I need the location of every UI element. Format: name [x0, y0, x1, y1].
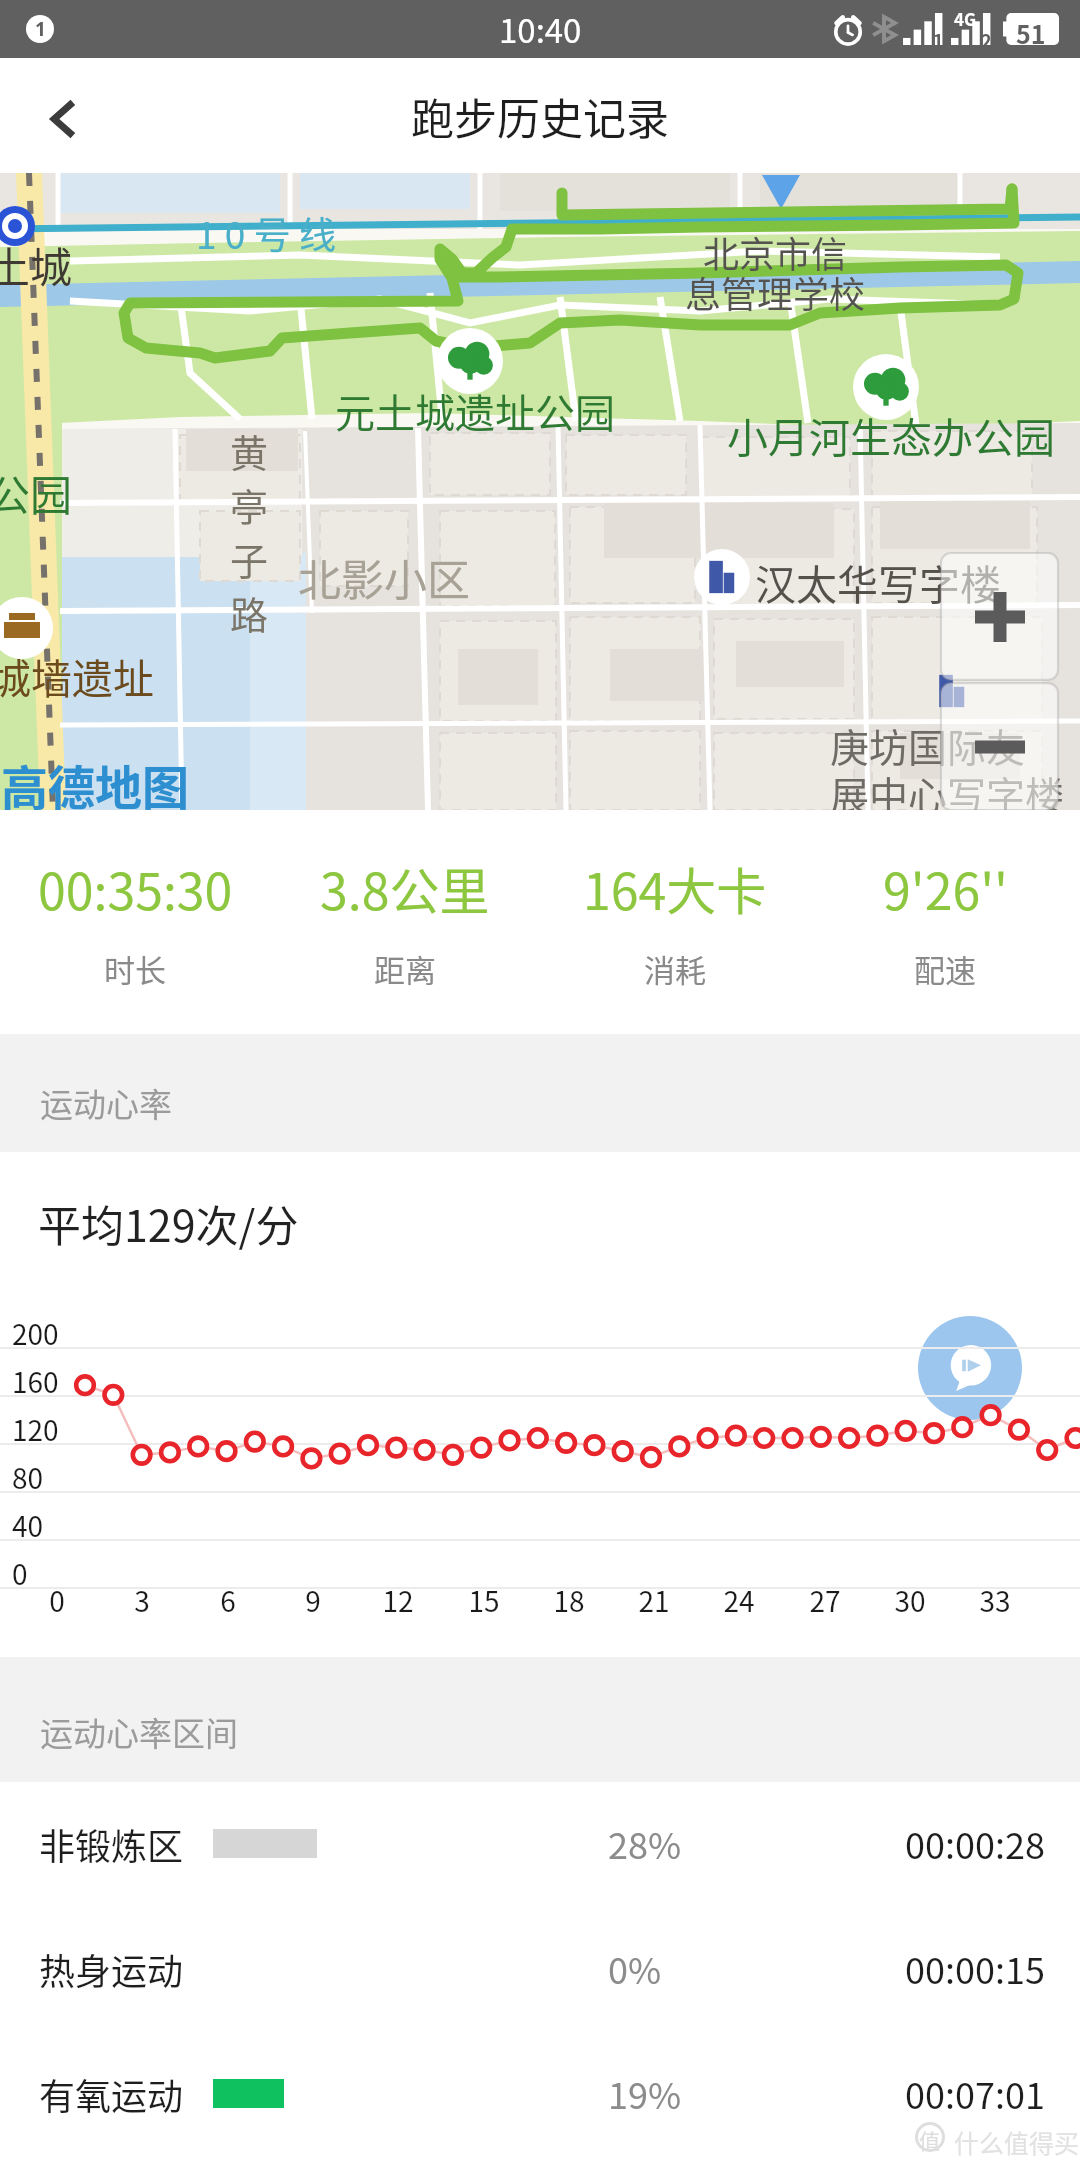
- staticText: 160: [12, 1361, 59, 1402]
- staticText: 北京市信 息管理学校: [680, 226, 870, 318]
- button[interactable]: Zoom in: [941, 553, 1058, 680]
- staticText: 汉太华写字楼: [755, 552, 1001, 611]
- staticText: 19%: [608, 2067, 682, 2119]
- staticText: 跑步历史记录: [411, 85, 669, 147]
- staticText: 1: [35, 16, 46, 42]
- staticText: 120: [12, 1409, 59, 1450]
- staticText: 12: [378, 1580, 418, 1621]
- staticText: 40: [12, 1505, 44, 1546]
- staticText: 00:00:28: [905, 1817, 1045, 1869]
- staticText: 1 0 号 线: [196, 206, 336, 260]
- button[interactable]: 非锻炼区: [0, 1783, 1080, 1908]
- staticText: 热身运动: [39, 1943, 184, 1995]
- staticText: 0%: [608, 1942, 662, 1994]
- staticText: 配速: [914, 946, 976, 991]
- staticText: 北影小区: [298, 546, 470, 608]
- button[interactable]: Back: [0, 58, 126, 173]
- staticText: 小月河生态办公园: [727, 405, 1055, 464]
- staticText: 24: [719, 1580, 759, 1621]
- staticText: 27: [805, 1580, 845, 1621]
- staticText: 1: [933, 27, 944, 53]
- staticText: 元土城遗址公园: [335, 382, 615, 440]
- staticText: 非锻炼区: [39, 1818, 184, 1870]
- staticText: 6: [208, 1580, 248, 1621]
- staticText: 15: [464, 1580, 504, 1621]
- staticText: 土城: [0, 234, 73, 295]
- staticText: 00:00:15: [905, 1942, 1045, 1994]
- staticText: 消耗: [644, 946, 706, 991]
- staticText: 时长: [104, 946, 166, 991]
- staticText: 运动心率区间: [40, 1708, 238, 1756]
- staticText: 4G: [954, 6, 977, 31]
- staticText: 有氧运动: [39, 2068, 184, 2120]
- staticText: 80: [12, 1457, 44, 1498]
- staticText: 2: [981, 27, 992, 53]
- staticText: 运动心率: [40, 1079, 172, 1127]
- staticText: 10:40: [499, 5, 582, 53]
- staticText: 3.8公里: [320, 852, 490, 924]
- staticText: 30: [890, 1580, 930, 1621]
- button[interactable]: Feedback: [918, 1316, 1022, 1420]
- staticText: 21: [634, 1580, 674, 1621]
- button[interactable]: 热身运动: [0, 1908, 1080, 2033]
- staticText: 33: [975, 1580, 1015, 1621]
- staticText: 城墙遗址: [0, 646, 154, 705]
- staticText: 28%: [608, 1817, 682, 1869]
- staticText: 公园: [0, 462, 73, 523]
- staticText: 庚坊国际友 展中心写字楼: [830, 717, 1065, 822]
- staticText: 18: [549, 1580, 589, 1621]
- staticText: 0: [12, 1553, 28, 1594]
- staticText: 51: [1016, 15, 1046, 51]
- staticText: 00:07:01: [905, 2067, 1045, 2119]
- staticText: 0: [37, 1580, 77, 1621]
- staticText: 200: [12, 1313, 59, 1354]
- staticText: 高德地图: [1, 750, 189, 818]
- staticText: 什么值得买: [954, 2124, 1080, 2160]
- staticText: 164大卡: [583, 852, 767, 924]
- staticText: 3: [122, 1580, 162, 1621]
- staticText: 平均129次/分: [38, 1192, 299, 1254]
- staticText: 值: [919, 2125, 940, 2155]
- staticText: 9: [293, 1580, 333, 1621]
- staticText: 距离: [374, 946, 436, 991]
- staticText: 黄 亭 子 路: [230, 423, 269, 640]
- button[interactable]: Zoom out: [941, 683, 1058, 810]
- staticText: 9'26'': [883, 852, 1008, 924]
- staticText: 00:35:30: [38, 852, 233, 924]
- button[interactable]: 有氧运动: [0, 2033, 1080, 2158]
